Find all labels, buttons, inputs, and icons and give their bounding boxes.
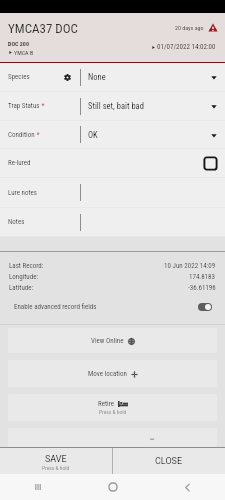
- button[interactable]: Species: [0, 63, 225, 91]
- button[interactable]: Trap Status: [0, 92, 225, 120]
- staticText: Press & hold: [99, 409, 127, 415]
- button[interactable]: CLOSE: [113, 448, 225, 474]
- staticText: Condition: [8, 131, 35, 139]
- staticText: Retire: [98, 400, 115, 408]
- staticText: DOC 200: [8, 40, 29, 47]
- staticText: Move location: [88, 370, 127, 378]
- staticText: Enable advanced record fields: [14, 303, 97, 311]
- staticText: Still set, bait bad: [88, 101, 144, 111]
- button[interactable]: Home: [75, 474, 150, 500]
- button[interactable]: Condition: [0, 121, 225, 148]
- button[interactable]: Back: [150, 474, 225, 500]
- staticText: 20 days ago: [175, 24, 204, 31]
- staticText: SAVE: [45, 454, 67, 465]
- staticText: None: [88, 72, 106, 82]
- button[interactable]: Recent apps: [0, 474, 75, 500]
- staticText: 10 Jun 2022 14:09: [164, 262, 216, 270]
- staticText: Lure notes: [8, 189, 37, 197]
- staticText: *: [40, 102, 45, 110]
- button[interactable]: Re-lured: [0, 149, 225, 177]
- staticText: Re-lured: [8, 159, 31, 167]
- staticText: View Online: [91, 337, 124, 345]
- staticText: *: [35, 131, 40, 139]
- staticText: 01/07/2022 14:02:00: [157, 43, 216, 51]
- button[interactable]: SAVE: [0, 448, 112, 474]
- staticText: Press & hold: [42, 465, 70, 471]
- staticText: Notes: [8, 218, 25, 226]
- other: Species settings: [64, 74, 71, 81]
- staticText: Last Record:: [9, 262, 44, 270]
- button[interactable]: Move location: [8, 360, 217, 387]
- staticText: Latitude:: [9, 284, 34, 292]
- staticText: CLOSE: [155, 456, 183, 467]
- button[interactable]: View Online: [8, 328, 217, 353]
- staticText: 174.8183: [189, 273, 216, 281]
- staticText: Trap Status: [8, 102, 40, 110]
- other: Overdue warning: [208, 23, 218, 32]
- button[interactable]: Lure notes: [0, 178, 225, 207]
- staticText: Species: [8, 73, 30, 81]
- staticText: -36.61196: [188, 284, 216, 292]
- button[interactable]: Retire: [8, 394, 217, 421]
- staticText: YMCA B: [14, 49, 34, 56]
- other: Re-lured checkbox: [203, 156, 218, 171]
- staticText: Longitude:: [9, 273, 39, 281]
- staticText: YMCA37 DOC: [8, 21, 78, 36]
- button[interactable]: Notes: [0, 208, 225, 236]
- button[interactable]: Enable advanced record fields: [0, 299, 225, 315]
- staticText: OK: [88, 130, 98, 140]
